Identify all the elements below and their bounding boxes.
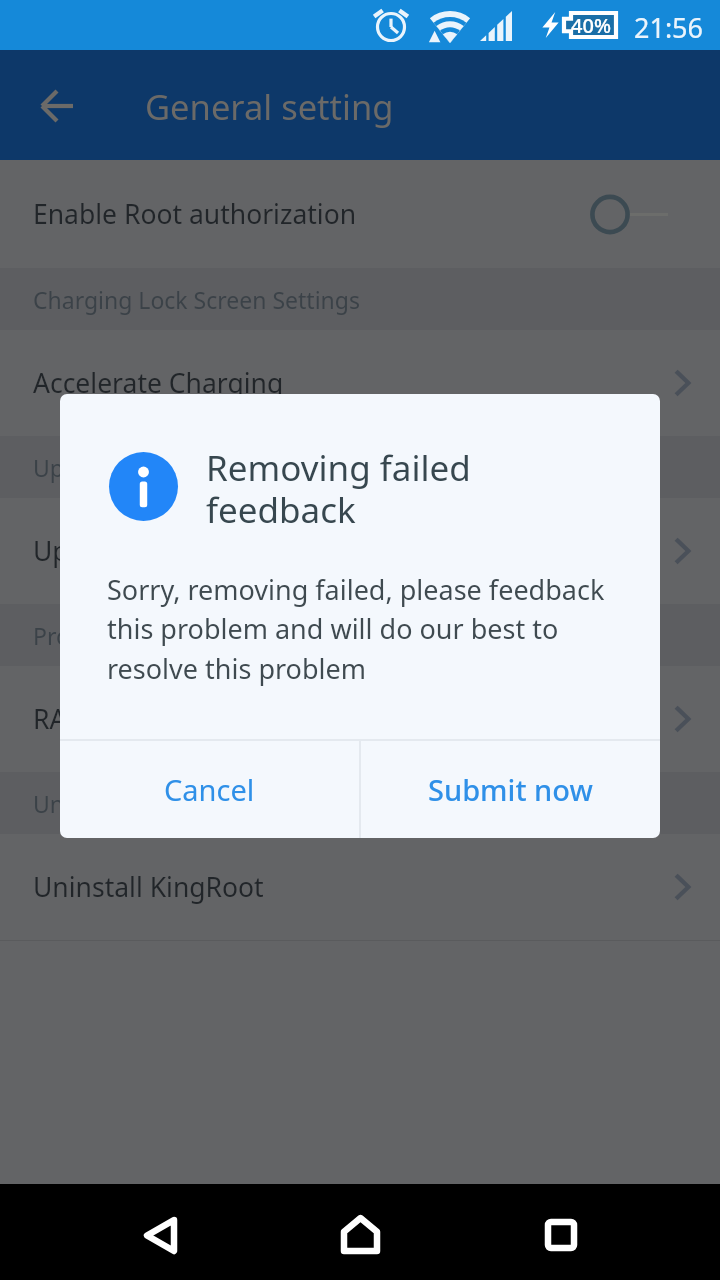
button[interactable]: Accelerate Charging bbox=[0, 330, 720, 436]
button[interactable]: Home bbox=[320, 1186, 400, 1280]
staticText: Accelerate Charging bbox=[33, 365, 284, 401]
button[interactable]: Upgrade KingRoot bbox=[0, 498, 720, 604]
staticText: 40% bbox=[571, 12, 611, 39]
staticText: RAM Cleaning bbox=[33, 701, 207, 737]
staticText: 21:56 bbox=[634, 9, 704, 46]
staticText: Charging Lock Screen Settings bbox=[33, 284, 360, 315]
button[interactable]: Back bbox=[24, 74, 88, 138]
staticText: Uninstall bbox=[33, 788, 129, 819]
staticText: Enable Root authorization bbox=[33, 196, 357, 232]
button[interactable]: Recent apps bbox=[521, 1187, 601, 1280]
staticText: Sorry, removing failed, please feedback … bbox=[107, 571, 652, 687]
staticText: Process bbox=[33, 620, 116, 651]
button[interactable]: Uninstall KingRoot bbox=[0, 834, 720, 940]
staticText: Uninstall KingRoot bbox=[33, 869, 264, 905]
staticText: Upgrade bbox=[33, 452, 128, 483]
staticText: Removing failed feedback bbox=[206, 444, 506, 533]
button[interactable]: Enable Root authorization bbox=[0, 160, 720, 268]
staticText: Cancel bbox=[164, 770, 255, 809]
staticText: Submit now bbox=[428, 770, 593, 809]
staticText: Upgrade KingRoot bbox=[33, 533, 263, 569]
button[interactable]: Back bbox=[120, 1187, 200, 1280]
button[interactable]: Cancel bbox=[60, 740, 359, 838]
button[interactable]: Submit now bbox=[361, 740, 660, 838]
staticText: General setting bbox=[145, 83, 394, 130]
button[interactable]: RAM Cleaning bbox=[0, 666, 720, 772]
